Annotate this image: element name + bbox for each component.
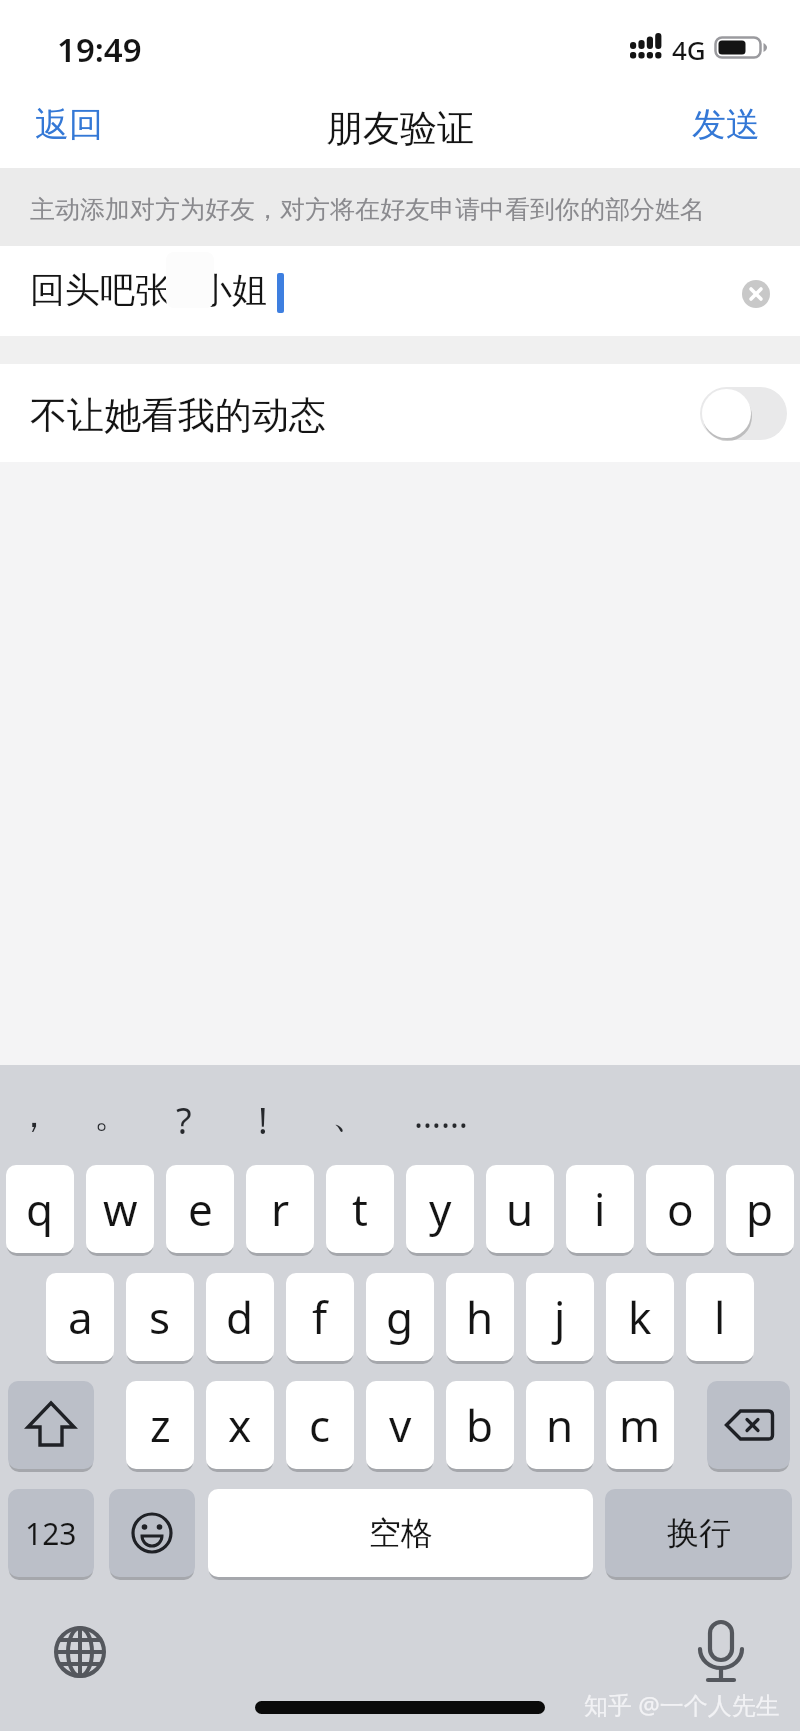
button[interactable]: m [606, 1381, 674, 1469]
staticText: 、 [332, 1092, 368, 1137]
button[interactable]: c [286, 1381, 354, 1469]
button[interactable]: y [406, 1165, 474, 1253]
button[interactable]: i [566, 1165, 634, 1253]
staticText: j [554, 1287, 566, 1347]
button[interactable]: k [606, 1273, 674, 1361]
button[interactable] [109, 1489, 195, 1577]
button[interactable]: l [686, 1273, 754, 1361]
staticText: 知乎 @一个人先生 [584, 1688, 780, 1721]
staticText: 不让她看我的动态 [30, 392, 326, 439]
staticText: n [546, 1395, 574, 1455]
button[interactable]: o [646, 1165, 714, 1253]
staticText: g [386, 1287, 414, 1347]
staticText: 小姐 [197, 268, 267, 312]
button[interactable]: j [526, 1273, 594, 1361]
button[interactable] [707, 1381, 790, 1469]
staticText: 回头吧张 [30, 268, 170, 312]
staticText: 123 [25, 1513, 77, 1554]
button[interactable]: a [46, 1273, 114, 1361]
button[interactable]: v [366, 1381, 434, 1469]
staticText: …… [414, 1092, 468, 1138]
staticText: s [149, 1287, 171, 1347]
button[interactable]: q [6, 1165, 74, 1253]
button[interactable]: h [446, 1273, 514, 1361]
button[interactable]: t [326, 1165, 394, 1253]
staticText: 朋友验证 [326, 105, 474, 152]
button[interactable]: r [246, 1165, 314, 1253]
staticText: p [746, 1179, 774, 1239]
button[interactable] [700, 387, 787, 440]
staticText: k [628, 1287, 652, 1347]
staticText: m [619, 1395, 661, 1455]
staticText: l [714, 1287, 726, 1347]
staticText: r [271, 1179, 290, 1239]
staticText: u [506, 1179, 534, 1239]
button[interactable] [8, 1381, 94, 1469]
staticText: 返回 [35, 103, 103, 146]
button[interactable]: w [86, 1165, 154, 1253]
staticText: h [466, 1287, 494, 1347]
staticText: i [594, 1179, 606, 1239]
button[interactable]: z [126, 1381, 194, 1469]
button[interactable]: e [166, 1165, 234, 1253]
button[interactable]: p [726, 1165, 794, 1253]
staticText: 主动添加对方为好友，对方将在好友申请中看到你的部分姓名 [30, 194, 705, 225]
staticText: ， [16, 1092, 52, 1137]
staticText: 换行 [667, 1513, 731, 1553]
staticText: f [312, 1287, 328, 1347]
staticText: ? [176, 1096, 192, 1145]
staticText: d [226, 1287, 254, 1347]
staticText: 空格 [369, 1513, 433, 1553]
staticText: q [26, 1179, 54, 1239]
staticText: b [466, 1395, 494, 1455]
staticText: x [228, 1395, 252, 1455]
button[interactable]: u [486, 1165, 554, 1253]
staticText: e [188, 1179, 213, 1239]
staticText: a [68, 1287, 93, 1347]
button[interactable]: 换行 [605, 1489, 792, 1577]
button[interactable]: 空格 [208, 1489, 593, 1577]
button[interactable]: f [286, 1273, 354, 1361]
button[interactable]: x [206, 1381, 274, 1469]
button[interactable]: d [206, 1273, 274, 1361]
button[interactable] [742, 280, 770, 308]
button[interactable]: s [126, 1273, 194, 1361]
staticText: 4G [672, 32, 706, 67]
staticText: z [150, 1395, 171, 1455]
staticText: y [429, 1179, 452, 1239]
staticText: 发送 [692, 103, 760, 146]
staticText: w [103, 1179, 138, 1239]
button[interactable]: b [446, 1381, 514, 1469]
staticText: 19:49 [57, 27, 142, 72]
staticText: t [352, 1179, 368, 1239]
button[interactable]: 发送 [680, 100, 800, 155]
staticText: o [667, 1179, 694, 1239]
button[interactable]: n [526, 1381, 594, 1469]
staticText: c [309, 1395, 331, 1455]
button[interactable]: g [366, 1273, 434, 1361]
staticText: ! [258, 1096, 268, 1145]
button[interactable]: 返回 [0, 100, 110, 155]
staticText: 。 [94, 1092, 130, 1137]
staticText: v [389, 1395, 412, 1455]
button[interactable]: 123 [8, 1489, 94, 1577]
